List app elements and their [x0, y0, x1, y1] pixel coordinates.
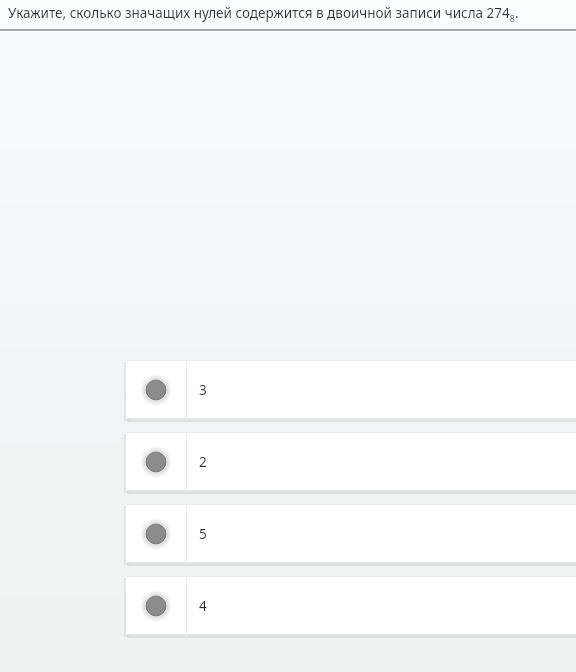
button[interactable]: Вариант 5: [126, 505, 576, 562]
button[interactable]: Вариант 3: [126, 361, 576, 418]
staticText: 4: [199, 597, 207, 615]
button[interactable]: Вариант 4: [126, 577, 576, 634]
button[interactable]: Вариант 2: [126, 433, 576, 490]
other: Вариант 5: [126, 505, 186, 562]
staticText: Укажите, сколько значащих нулей содержит…: [8, 4, 519, 24]
staticText: 3: [199, 381, 207, 399]
staticText: 2: [199, 453, 207, 471]
other: Вариант 3: [126, 361, 186, 418]
other: Вариант 4: [126, 577, 186, 634]
staticText: 5: [199, 525, 207, 543]
other: Вариант 2: [126, 433, 186, 490]
